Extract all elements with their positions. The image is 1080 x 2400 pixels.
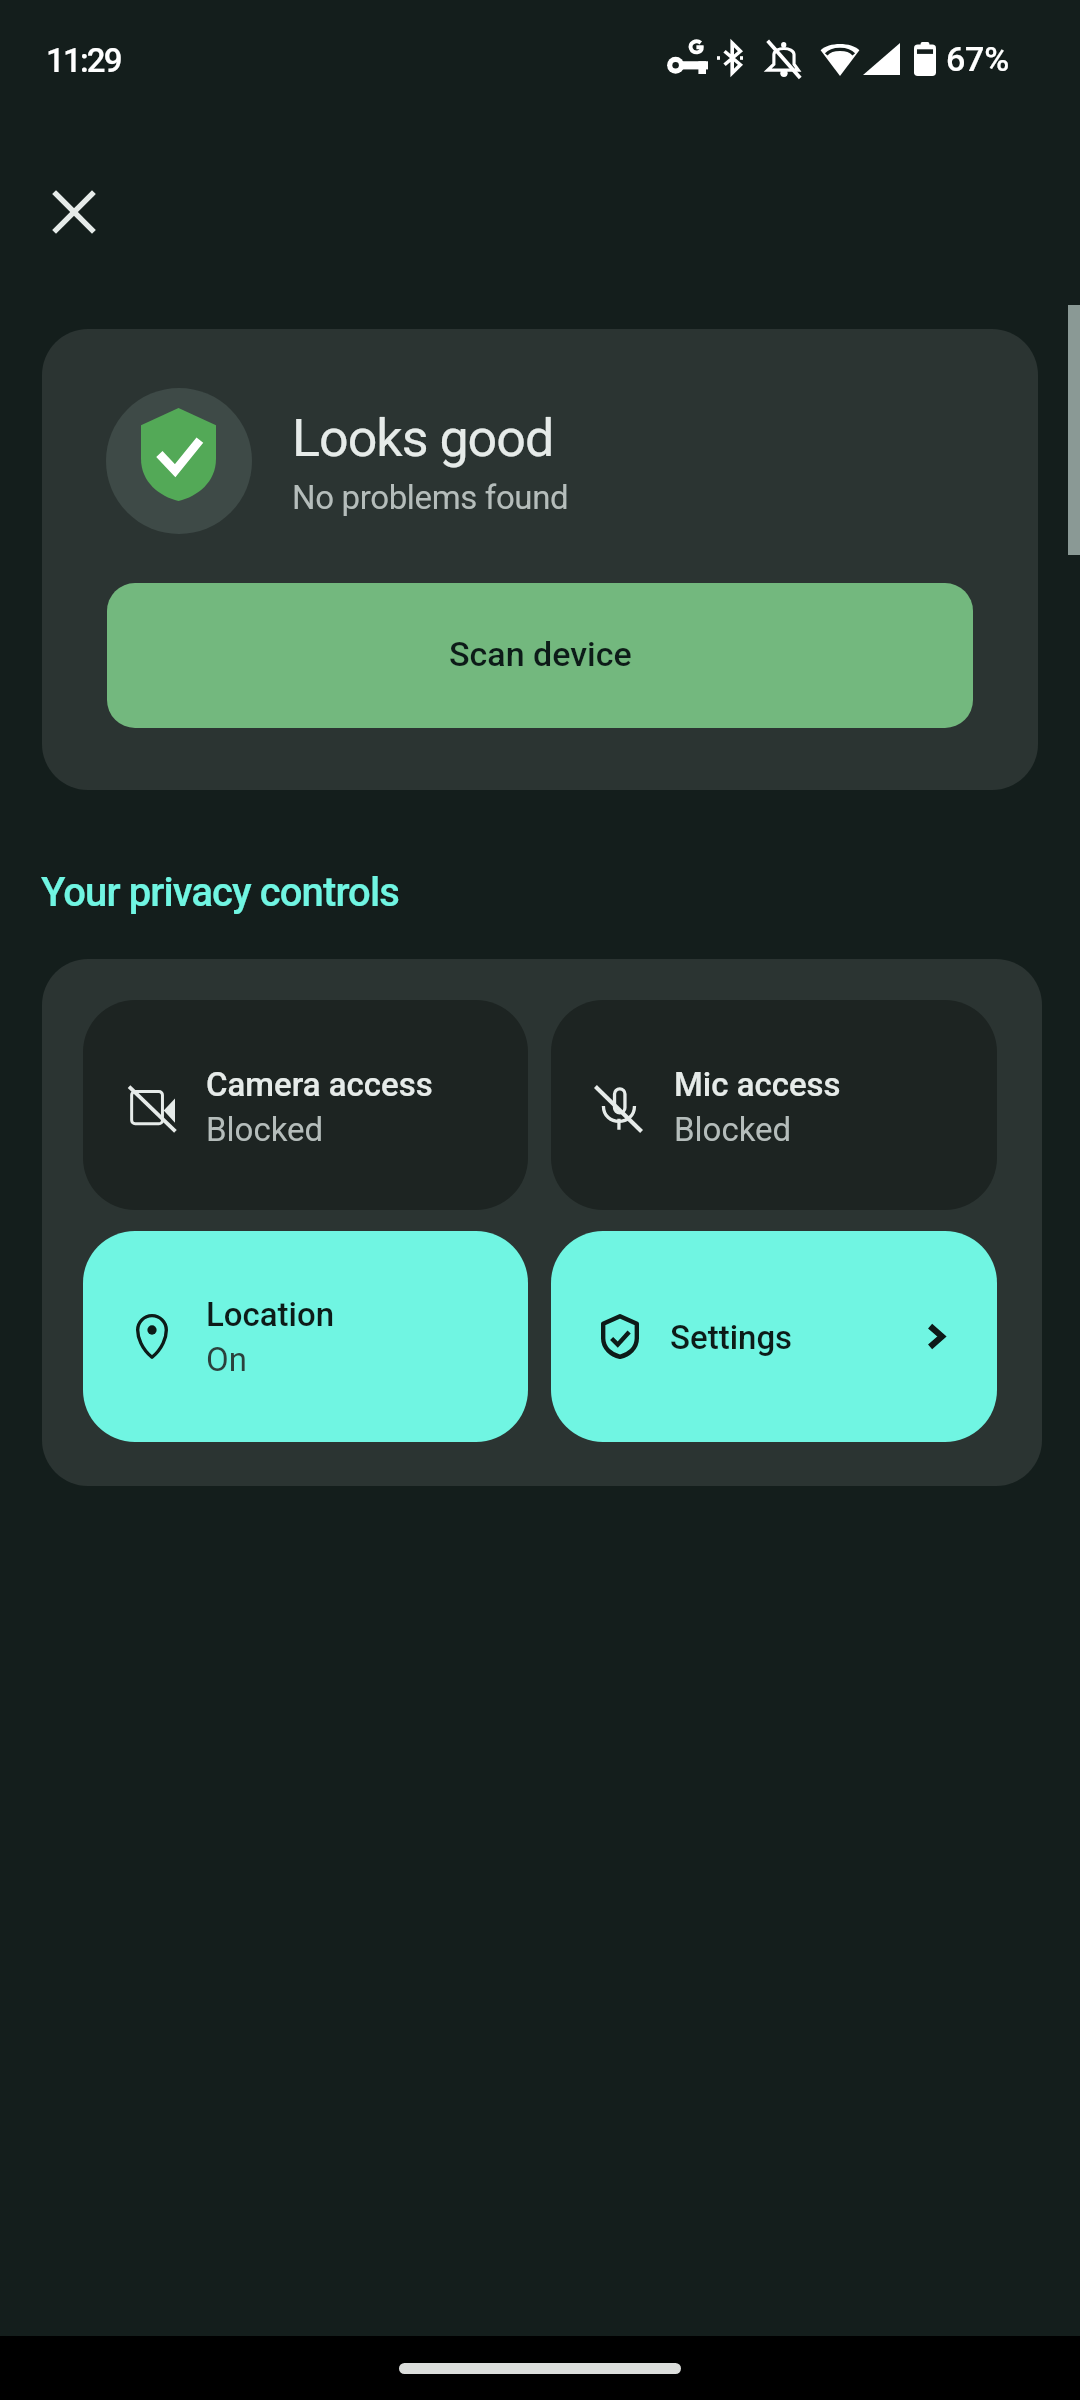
staticText: Mic access: [674, 1060, 841, 1105]
button[interactable]: Mic access: [551, 1000, 997, 1210]
staticText: Scan device: [449, 634, 632, 674]
button[interactable]: Settings: [551, 1231, 997, 1442]
staticText: 67%: [946, 39, 1010, 79]
staticText: Settings: [670, 1318, 793, 1357]
button[interactable]: Close: [24, 162, 124, 262]
staticText: Camera access: [206, 1060, 433, 1105]
staticText: Looks good: [292, 408, 554, 469]
staticText: 11:29: [46, 41, 121, 80]
staticText: Your privacy controls: [41, 869, 399, 916]
button[interactable]: Scan device: [107, 583, 973, 728]
staticText: On: [206, 1335, 247, 1380]
staticText: Blocked: [674, 1105, 792, 1150]
staticText: Location: [206, 1290, 335, 1335]
button[interactable]: Location: [83, 1231, 528, 1442]
button[interactable]: Camera access: [83, 1000, 528, 1210]
staticText: No problems found: [292, 478, 569, 517]
staticText: Blocked: [206, 1105, 324, 1150]
